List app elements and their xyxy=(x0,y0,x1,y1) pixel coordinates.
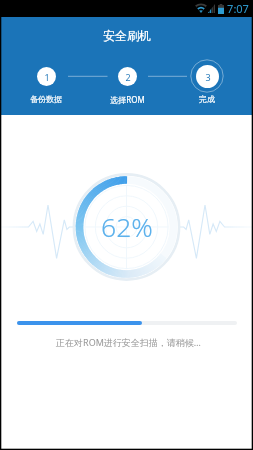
staticText: 62% xyxy=(101,209,153,245)
button[interactable]: 1 xyxy=(20,59,72,107)
staticText: 选择ROM xyxy=(110,94,145,105)
staticText: 备份数据 xyxy=(30,94,62,104)
staticText: 1 xyxy=(44,71,50,83)
staticText: 完成 xyxy=(199,94,215,104)
staticText: 3 xyxy=(205,71,211,83)
staticText: 安全刷机 xyxy=(103,28,151,43)
staticText: 正在对ROM进行安全扫描，请稍候… xyxy=(56,336,201,348)
button[interactable]: 2 xyxy=(101,59,153,107)
staticText: 2 xyxy=(125,71,131,83)
staticText: 7:07 xyxy=(227,1,249,16)
button[interactable]: 3 xyxy=(181,59,233,107)
